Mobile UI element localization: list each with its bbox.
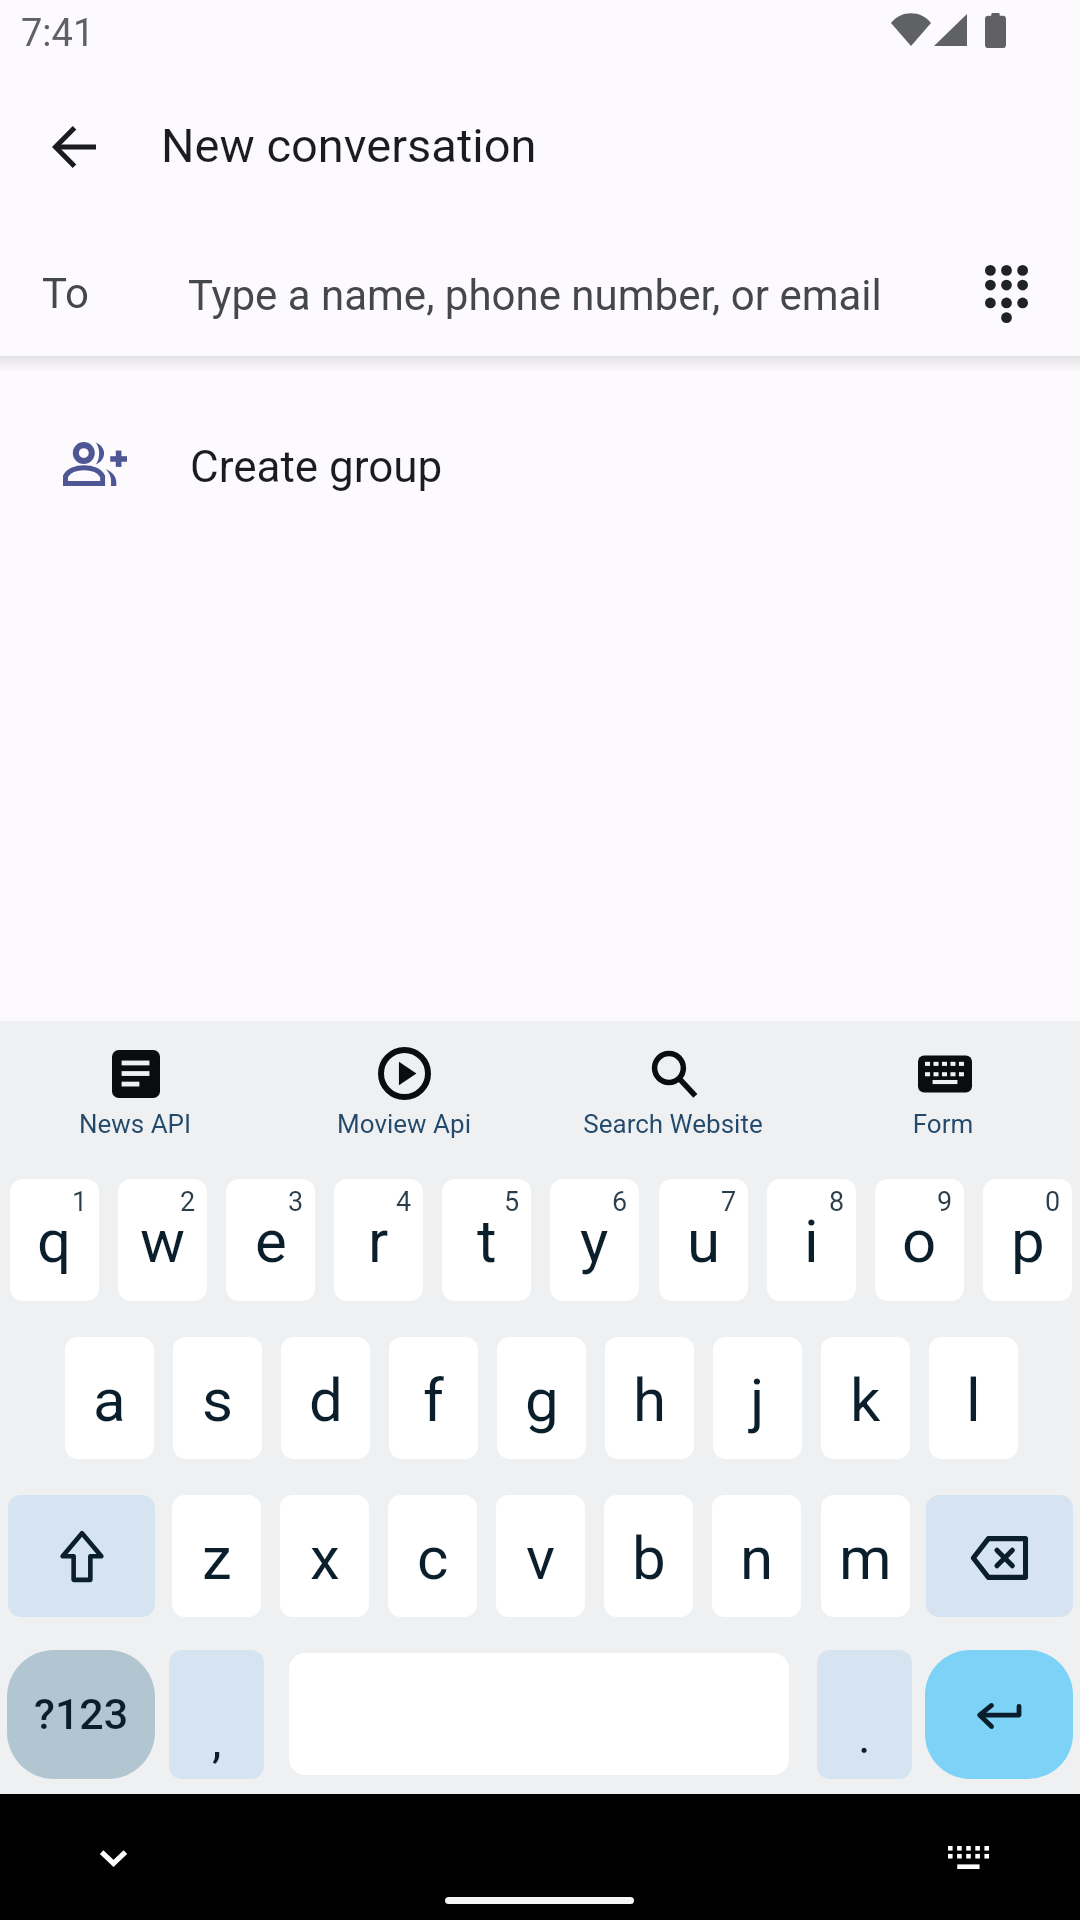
staticText: s <box>202 1365 233 1435</box>
button[interactable]: 0 <box>983 1179 1072 1301</box>
button[interactable]: Enter <box>925 1650 1073 1779</box>
staticText: d <box>309 1365 343 1435</box>
button[interactable]: ?123 <box>7 1650 155 1779</box>
staticText: New conversation <box>161 118 537 173</box>
button[interactable]: Switch keyboard <box>936 1825 1000 1889</box>
button[interactable]: m <box>821 1495 910 1617</box>
staticText: ?123 <box>34 1689 129 1739</box>
staticText: a <box>93 1365 126 1435</box>
button[interactable]: Dialpad <box>958 246 1054 342</box>
staticText: Moview Api <box>270 1109 538 1139</box>
staticText: 1 <box>72 1186 88 1218</box>
staticText: l <box>966 1365 981 1435</box>
button[interactable]: d <box>281 1337 370 1459</box>
staticText: 5 <box>504 1186 520 1218</box>
staticText: c <box>417 1523 449 1593</box>
button[interactable]: 8 <box>767 1179 856 1301</box>
button[interactable]: 6 <box>550 1179 639 1301</box>
button[interactable]: b <box>604 1495 693 1617</box>
button[interactable]: Form <box>809 1041 1077 1161</box>
staticText: Type a name, phone number, or email <box>188 271 882 320</box>
staticText: , <box>212 1712 222 1768</box>
button[interactable]: . <box>817 1650 912 1779</box>
staticText: i <box>804 1206 819 1276</box>
button[interactable]: , <box>169 1650 264 1779</box>
staticText: o <box>902 1206 937 1276</box>
staticText: m <box>839 1523 892 1593</box>
staticText: 9 <box>937 1186 953 1218</box>
button[interactable]: News API <box>1 1041 269 1161</box>
button[interactable]: j <box>713 1337 802 1459</box>
button[interactable]: 4 <box>334 1179 423 1301</box>
staticText: h <box>633 1365 667 1435</box>
button[interactable]: 7 <box>659 1179 748 1301</box>
staticText: j <box>750 1365 765 1435</box>
button[interactable]: k <box>821 1337 910 1459</box>
button[interactable]: z <box>172 1495 261 1617</box>
staticText: t <box>477 1206 497 1276</box>
button[interactable]: 9 <box>875 1179 964 1301</box>
staticText: 7 <box>721 1186 737 1218</box>
staticText: v <box>526 1523 556 1593</box>
staticText: e <box>255 1206 287 1276</box>
button[interactable]: 5 <box>442 1179 531 1301</box>
staticText: w <box>140 1206 186 1276</box>
staticText: 2 <box>180 1186 196 1218</box>
button[interactable]: 2 <box>118 1179 207 1301</box>
staticText: 8 <box>829 1186 845 1218</box>
button[interactable]: Hide keyboard <box>81 1825 145 1889</box>
staticText: Search Website <box>539 1109 807 1139</box>
staticText: b <box>632 1523 666 1593</box>
staticText: z <box>202 1523 232 1593</box>
button[interactable]: Shift <box>8 1495 155 1617</box>
button[interactable]: h <box>605 1337 694 1459</box>
button[interactable]: Moview Api <box>270 1041 538 1161</box>
button[interactable]: n <box>712 1495 801 1617</box>
staticText: 6 <box>612 1186 628 1218</box>
staticText: r <box>368 1206 389 1276</box>
staticText: u <box>687 1206 721 1276</box>
staticText: f <box>423 1365 444 1435</box>
staticText: g <box>525 1365 559 1435</box>
staticText: q <box>37 1206 72 1276</box>
staticText: 3 <box>288 1186 304 1218</box>
staticText: Create group <box>190 441 443 493</box>
button[interactable]: l <box>929 1337 1018 1459</box>
staticText: News API <box>1 1109 269 1139</box>
button[interactable]: s <box>173 1337 262 1459</box>
button[interactable]: 1 <box>10 1179 99 1301</box>
button[interactable]: Backspace <box>926 1495 1073 1617</box>
button[interactable]: c <box>388 1495 477 1617</box>
staticText: y <box>580 1206 609 1276</box>
staticText: x <box>310 1523 340 1593</box>
button[interactable]: Create group <box>0 392 1080 544</box>
staticText: . <box>858 1708 871 1764</box>
staticText: 0 <box>1045 1186 1061 1218</box>
button[interactable]: x <box>280 1495 369 1617</box>
staticText: Form <box>809 1109 1077 1139</box>
button[interactable]: Back <box>26 99 122 195</box>
button[interactable]: Search Website <box>539 1041 807 1161</box>
button[interactable]: f <box>389 1337 478 1459</box>
button[interactable]: g <box>497 1337 586 1459</box>
staticText: 7:41 <box>21 11 95 56</box>
button[interactable]: To <box>0 234 1080 356</box>
staticText: p <box>1011 1206 1045 1276</box>
staticText: 4 <box>396 1186 412 1218</box>
staticText: k <box>850 1365 881 1435</box>
button[interactable]: v <box>496 1495 585 1617</box>
button[interactable]: a <box>65 1337 154 1459</box>
button[interactable]: 3 <box>226 1179 315 1301</box>
staticText: To <box>42 269 89 318</box>
staticText: n <box>740 1523 774 1593</box>
